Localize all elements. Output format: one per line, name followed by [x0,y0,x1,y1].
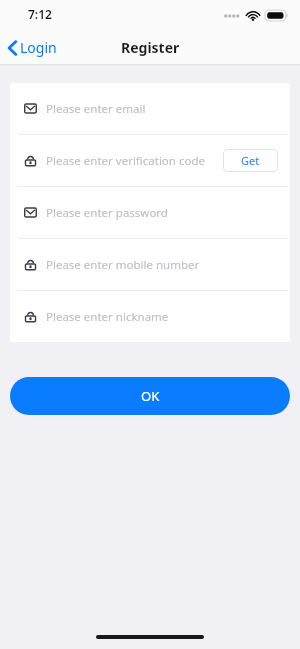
button[interactable]: Get [223,149,278,172]
button[interactable]: OK [10,377,290,415]
staticText: 7:12 [28,6,52,22]
staticText: Please enter password [46,205,278,221]
staticText: Please enter email [46,101,278,117]
staticText: Please enter nickname [46,309,278,325]
button[interactable]: Login [0,34,65,61]
button[interactable]: Please enter mobile number [10,239,290,290]
staticText: Please enter mobile number [46,257,278,273]
staticText: Register [121,38,180,57]
staticText: OK [141,387,160,405]
button[interactable]: Please enter email [10,83,290,134]
staticText: Get [241,153,260,168]
button[interactable]: Please enter verification code [10,135,290,186]
staticText: Please enter verification code [46,153,223,169]
staticText: Login [20,38,57,57]
button[interactable]: Please enter nickname [10,291,290,342]
button[interactable]: Please enter password [10,187,290,238]
